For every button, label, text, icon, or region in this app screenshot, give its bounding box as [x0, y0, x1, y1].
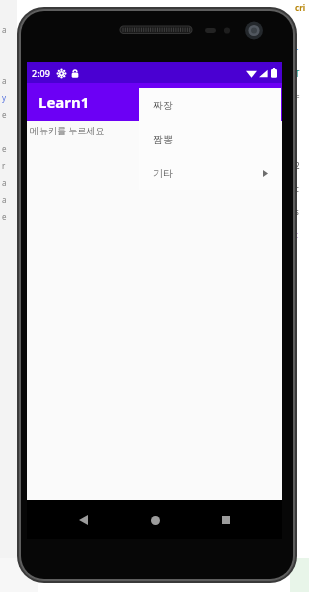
staticText: e: [2, 211, 7, 222]
staticText: 기타: [153, 167, 173, 180]
staticText: y: [2, 92, 7, 103]
staticText: c: [295, 183, 299, 194]
staticText: =: [295, 91, 300, 102]
staticText: cri: [295, 2, 306, 13]
staticText: s: [295, 206, 299, 217]
staticText: i: [295, 137, 298, 148]
button[interactable]: 짜장: [139, 88, 281, 122]
staticText: T: [295, 68, 300, 79]
staticText: e: [2, 143, 7, 154]
staticText: Learn1: [38, 92, 90, 112]
staticText: e: [2, 109, 7, 120]
staticText: 메뉴키를 누르세요: [30, 124, 105, 136]
button[interactable]: Back: [70, 507, 96, 533]
button[interactable]: Learn1: [27, 83, 282, 121]
staticText: a: [2, 177, 7, 188]
staticText: r: [295, 45, 299, 56]
staticText: .: [295, 114, 298, 125]
staticText: 2: [295, 160, 300, 171]
button[interactable]: Home: [142, 507, 168, 533]
button[interactable]: Recent apps: [213, 507, 239, 533]
staticText: a: [2, 24, 7, 35]
staticText: a: [2, 75, 7, 86]
staticText: 짜장: [153, 99, 173, 112]
staticText: 2:09: [32, 67, 50, 79]
staticText: 짬뽕: [153, 133, 173, 146]
staticText: t: [295, 229, 298, 240]
button[interactable]: 짬뽕: [139, 122, 281, 156]
staticText: r: [2, 160, 6, 171]
button[interactable]: 기타: [139, 156, 281, 190]
staticText: a: [2, 194, 7, 205]
